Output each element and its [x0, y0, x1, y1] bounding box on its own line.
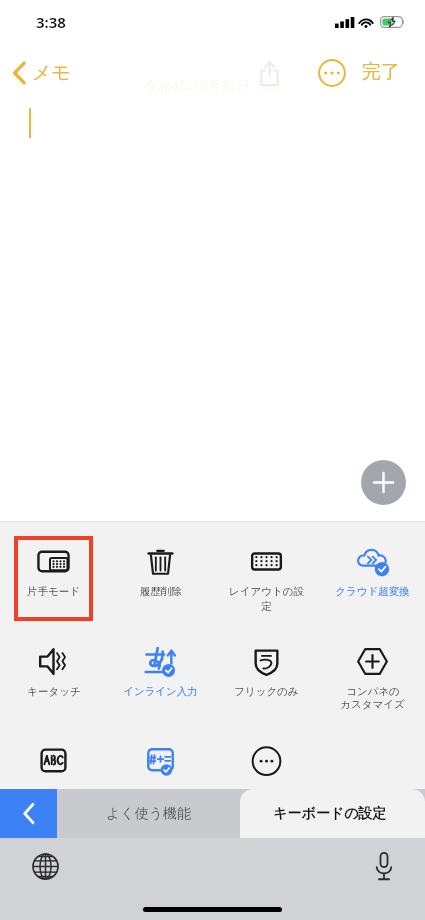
button[interactable]: One-handed mode	[18, 540, 89, 617]
button[interactable]: More	[227, 736, 306, 821]
button[interactable]: Back	[0, 789, 57, 838]
staticText: 3:38	[36, 12, 66, 32]
button[interactable]: Symbol input	[121, 736, 200, 821]
button[interactable]: Delete history	[121, 536, 200, 621]
button[interactable]: More options	[311, 52, 353, 94]
button[interactable]: Layout settings	[227, 536, 306, 621]
staticText: 令和4年10月31日 3:35	[144, 77, 281, 95]
button[interactable]: Customize panel	[333, 636, 412, 721]
staticText: カスタマイズ	[340, 698, 405, 711]
button[interactable]: Dictation	[362, 844, 406, 888]
button[interactable]: Add attachment	[361, 460, 406, 505]
button[interactable]: Key touch	[14, 636, 93, 721]
button[interactable]: Next keyboard	[23, 844, 67, 888]
button[interactable]: Cloud conversion	[333, 536, 412, 621]
staticText: フリックのみ	[234, 685, 299, 698]
staticText: レイアウトの設定	[227, 585, 306, 613]
staticText: インライン入力	[123, 685, 198, 698]
staticText: メモ	[32, 61, 71, 85]
button[interactable]: Inline input	[121, 636, 200, 721]
button[interactable]: メモ	[7, 56, 77, 90]
staticText: 履歴削除	[140, 585, 182, 598]
staticText: キータッチ	[27, 685, 81, 698]
staticText: よく使う機能	[106, 805, 191, 823]
button[interactable]: 完了	[356, 55, 406, 89]
staticText: コンパネの	[346, 685, 400, 698]
button[interactable]: ABC input	[14, 736, 93, 821]
button[interactable]	[333, 736, 412, 821]
button[interactable]: キーボードの設定	[240, 789, 425, 838]
staticText: クラウド超変換	[335, 585, 410, 598]
button[interactable]: よく使う機能	[57, 789, 240, 838]
button[interactable]: Flick only	[227, 636, 306, 721]
staticText: 片手モード	[27, 585, 80, 598]
button[interactable]: Share	[248, 52, 290, 94]
staticText: キーボードの設定	[273, 805, 387, 823]
staticText: 完了	[362, 60, 400, 84]
